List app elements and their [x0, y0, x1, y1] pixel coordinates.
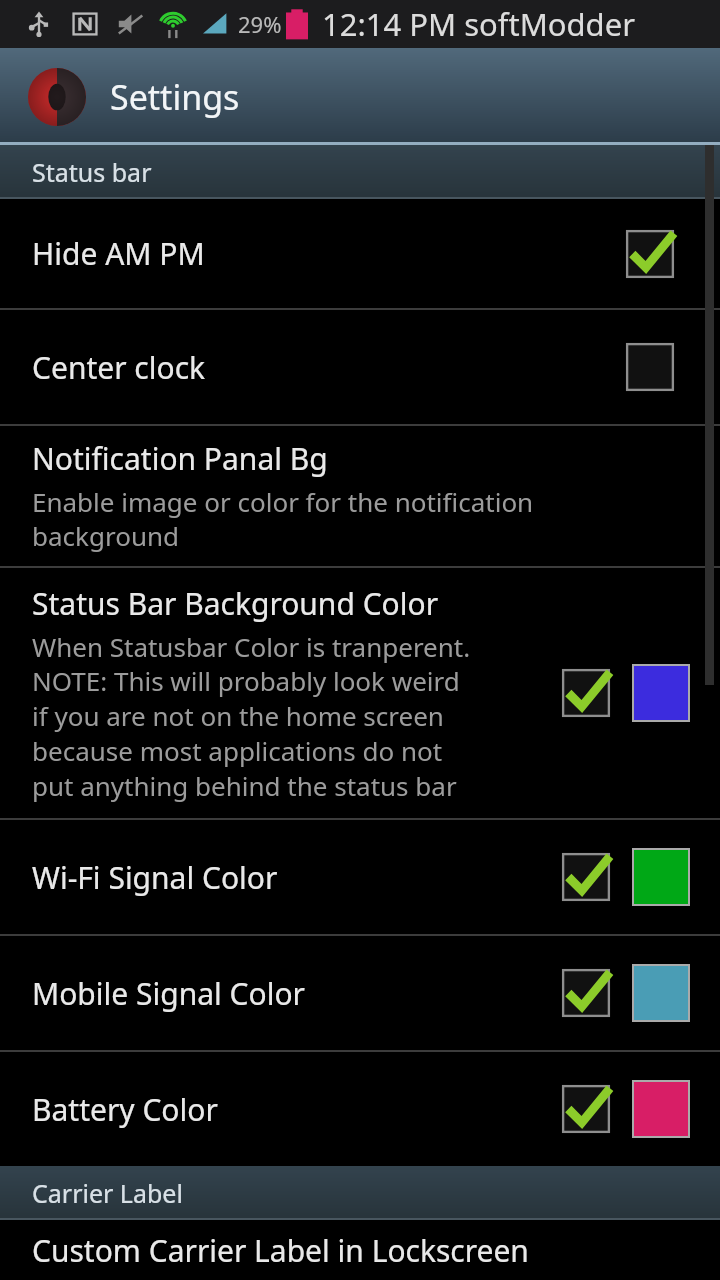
staticText: Custom Carrier Label in Lockscreen [32, 1230, 529, 1271]
button[interactable]: Wi-Fi Signal Color [0, 820, 720, 934]
staticText: Carrier Label [32, 1176, 183, 1210]
staticText: Enable image or color for the notificati… [32, 484, 534, 554]
staticText: 29% [238, 9, 282, 39]
staticText: Wi-Fi Signal Color [32, 857, 278, 898]
button[interactable]: Toggle Status Bar Background Color [560, 667, 612, 719]
button[interactable]: Custom Carrier Label in Lockscreen [0, 1220, 720, 1280]
button[interactable]: Toggle Battery Color [560, 1083, 612, 1135]
staticText: Mobile Signal Color [32, 973, 305, 1014]
staticText: Settings [110, 74, 240, 120]
button[interactable]: Hide AM PM [0, 199, 720, 308]
button[interactable]: Status Bar Background Color [0, 568, 720, 818]
staticText: Notification Panal Bg [32, 438, 328, 479]
button[interactable]: Battery Color [0, 1052, 720, 1166]
staticText: Status Bar Background Color [32, 583, 439, 624]
staticText: Status bar [32, 155, 152, 189]
button[interactable]: Mobile Signal Color [0, 936, 720, 1050]
button[interactable]: Center clock [0, 310, 720, 424]
button[interactable]: Toggle Hide AM PM [624, 228, 676, 280]
button[interactable]: Toggle Center clock [624, 341, 676, 393]
staticText: 12:14 PM softModder [322, 3, 635, 45]
button[interactable]: Toggle Mobile Signal Color [560, 967, 612, 1019]
staticText: When Statusbar Color is tranperent. NOTE… [32, 629, 471, 804]
staticText: Hide AM PM [32, 233, 205, 274]
staticText: Battery Color [32, 1089, 218, 1130]
button[interactable]: Notification Panal Bg [0, 426, 720, 566]
button[interactable]: Toggle Wi-Fi Signal Color [560, 851, 612, 903]
staticText: Center clock [32, 347, 206, 388]
